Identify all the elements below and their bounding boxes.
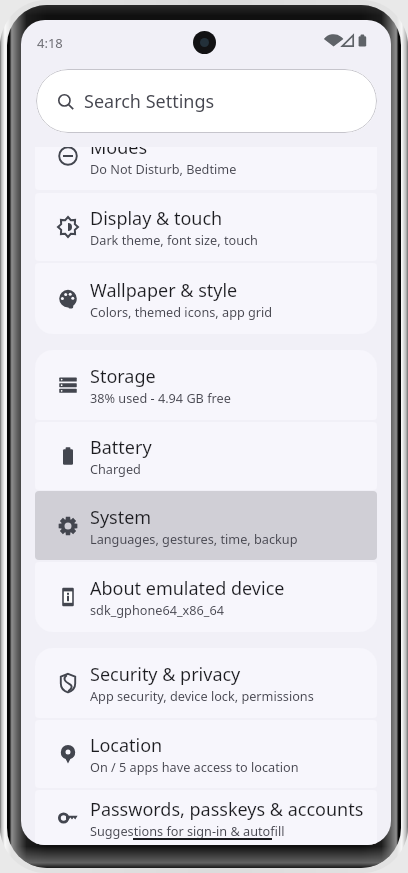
staticText: Search Settings [84,89,215,114]
staticText: Passwords, passkeys & accounts [90,797,364,822]
staticText: Storage [90,364,156,389]
staticText: Modes [90,147,148,160]
button[interactable]: Modes [35,147,377,190]
staticText: Languages, gestures, time, backup [90,530,298,547]
staticText: Display & touch [90,206,223,231]
button[interactable]: Battery [35,422,377,490]
staticText: App security, device lock, permissions [90,687,314,704]
staticText: Battery [90,435,152,460]
button[interactable]: Search Settings [36,69,377,133]
button[interactable]: System [35,491,377,560]
staticText: 4:18 [37,34,63,52]
staticText: Wallpaper & style [90,278,238,303]
staticText: Location [90,733,163,758]
staticText: Colors, themed icons, app grid [90,303,273,320]
staticText: Dark theme, font size, touch [90,231,258,248]
staticText: 38% used - 4.94 GB free [90,389,231,406]
button[interactable]: Location [35,720,377,788]
staticText: Security & privacy [90,662,241,687]
staticText: Charged [90,460,141,477]
button[interactable]: Wallpaper & style [35,263,377,334]
button[interactable]: About emulated device [35,562,377,632]
button[interactable]: Passwords, passkeys & accounts [35,790,377,845]
staticText: On / 5 apps have access to location [90,758,299,775]
staticText: System [90,505,152,530]
staticText: Do Not Disturb, Bedtime [90,160,237,177]
button[interactable]: Storage [35,350,377,420]
button[interactable]: Security & privacy [35,648,377,718]
button[interactable]: Display & touch [35,193,377,261]
staticText: Suggestions for sign-in & autofill [90,822,285,839]
staticText: About emulated device [90,576,285,601]
staticText: sdk_gphone64_x86_64 [90,601,224,618]
